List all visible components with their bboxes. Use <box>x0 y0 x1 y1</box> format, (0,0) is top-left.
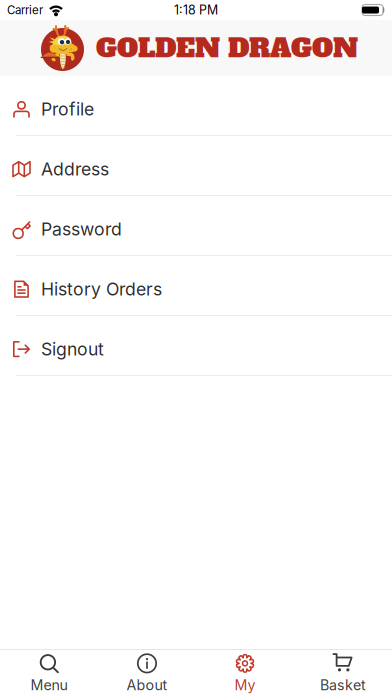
button[interactable]: Profile <box>0 76 392 136</box>
staticText: Password <box>41 218 122 240</box>
staticText: My <box>234 676 255 694</box>
button[interactable]: My <box>196 646 294 696</box>
button[interactable]: Signout <box>0 316 392 376</box>
staticText: GOLDEN DRAGON <box>96 30 358 66</box>
staticText: About <box>126 676 167 694</box>
staticText: Carrier <box>7 3 43 17</box>
button[interactable]: History Orders <box>0 256 392 316</box>
staticText: 1:18 PM <box>174 2 218 17</box>
button[interactable]: Menu <box>0 646 98 696</box>
button[interactable]: Basket <box>294 646 392 696</box>
staticText: Profile <box>41 98 94 120</box>
staticText: History Orders <box>41 278 162 300</box>
staticText: Basket <box>320 676 366 694</box>
button[interactable]: Password <box>0 196 392 256</box>
button[interactable]: About <box>98 646 196 696</box>
staticText: Signout <box>41 338 104 360</box>
button[interactable]: Address <box>0 136 392 196</box>
staticText: Address <box>41 158 109 180</box>
staticText: Menu <box>30 676 67 694</box>
